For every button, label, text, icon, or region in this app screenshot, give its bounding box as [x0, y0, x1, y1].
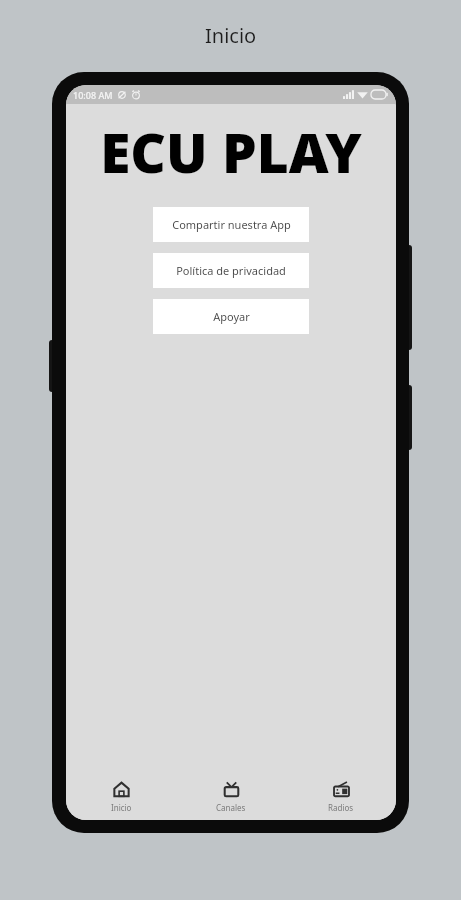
button[interactable]: Apoyar — [153, 299, 309, 334]
staticText: Inicio — [111, 802, 132, 813]
staticText: ECU PLAY — [100, 114, 362, 176]
staticText: Compartir nuestra App — [172, 217, 291, 232]
button[interactable]: Compartir nuestra App — [153, 207, 309, 242]
button[interactable]: Inicio — [66, 774, 176, 820]
staticText: Política de privacidad — [176, 263, 286, 278]
staticText: 10:08 AM — [73, 89, 113, 101]
staticText: Inicio — [205, 22, 257, 49]
button[interactable]: Radios — [286, 774, 396, 820]
button[interactable]: Canales — [176, 774, 286, 820]
staticText: Apoyar — [213, 309, 250, 324]
staticText: Canales — [216, 802, 246, 813]
staticText: Radios — [328, 802, 354, 813]
button[interactable]: Política de privacidad — [153, 253, 309, 288]
